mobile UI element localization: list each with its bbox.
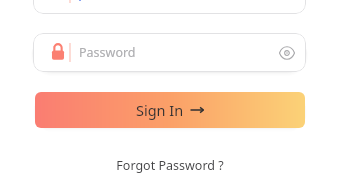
staticText: Password bbox=[79, 44, 268, 61]
staticText: Sign In bbox=[136, 100, 184, 120]
button[interactable]: Forgot Password ? bbox=[106, 152, 234, 179]
button[interactable] bbox=[33, 0, 306, 14]
button[interactable]: Show password bbox=[268, 33, 306, 72]
staticText: Forgot Password ? bbox=[116, 157, 224, 174]
button[interactable]: Password bbox=[33, 33, 306, 72]
button[interactable]: Sign In bbox=[35, 92, 305, 128]
